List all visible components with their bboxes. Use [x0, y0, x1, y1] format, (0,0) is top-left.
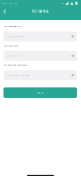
staticText: Lưu lại: [37, 91, 44, 94]
staticText: Mật khẩu mới *: [3, 44, 18, 47]
button[interactable]: Lưu lại: [3, 87, 77, 98]
button[interactable]: Show password: [70, 31, 76, 41]
staticText: Mật khẩu hiện tại *: [3, 25, 21, 28]
staticText: 4G: [61, 2, 63, 4]
staticText: Mật khẩu mới: [6, 54, 19, 57]
button[interactable]: Back: [1, 6, 9, 16]
staticText: Xác nhận mật khẩu mới: [6, 74, 28, 76]
staticText: Xác nhận mật khẩu mới *: [3, 64, 27, 66]
button[interactable]: Show password: [70, 70, 76, 80]
staticText: Đổi mật khẩu: [32, 10, 49, 13]
staticText: 10:36 Th 5, 12: [2, 2, 17, 5]
button[interactable]: Show password: [70, 51, 76, 61]
staticText: Mật khẩu hiện tại: [6, 35, 22, 38]
